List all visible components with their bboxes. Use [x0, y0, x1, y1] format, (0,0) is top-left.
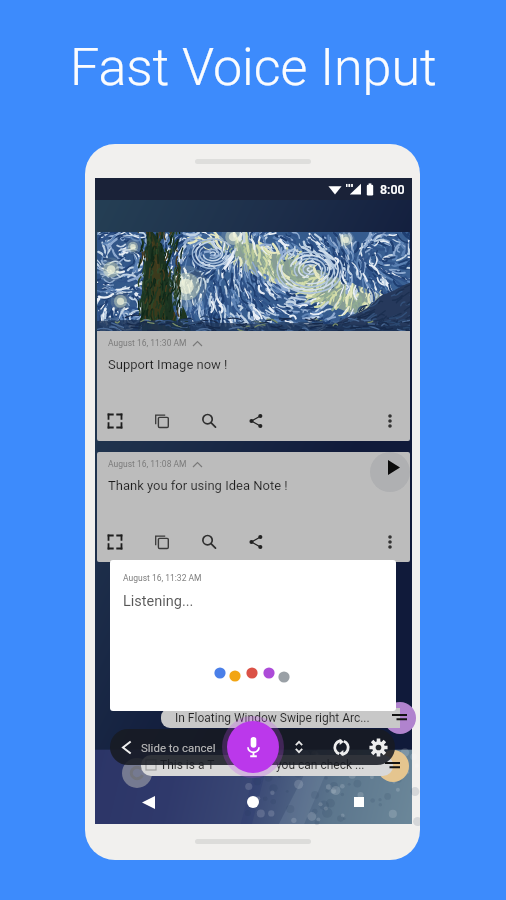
- button[interactable]: Search: [200, 412, 218, 430]
- staticText: August 16, 11:32 AM: [123, 573, 202, 583]
- staticText: Slide to cancel: [141, 741, 216, 754]
- staticText: In Floating Window Swipe right Arc...: [175, 711, 370, 725]
- button[interactable]: More options: [381, 412, 399, 430]
- button[interactable]: Refresh: [331, 737, 352, 758]
- button[interactable]: Voice input: [227, 721, 279, 773]
- staticText: Fast Voice Input: [70, 37, 437, 95]
- button[interactable]: Fullscreen: [106, 533, 124, 551]
- button[interactable]: Back: [135, 789, 161, 815]
- button[interactable]: Search: [200, 533, 218, 551]
- button[interactable]: Recents: [346, 789, 372, 815]
- button[interactable]: [161, 708, 400, 728]
- button[interactable]: Share: [247, 533, 265, 551]
- button[interactable]: Share: [247, 412, 265, 430]
- button[interactable]: Home: [240, 789, 266, 815]
- button[interactable]: Fullscreen: [106, 412, 124, 430]
- staticText: Listening...: [123, 593, 194, 610]
- button[interactable]: Play: [97, 452, 410, 562]
- button[interactable]: Back: [121, 740, 132, 755]
- staticText: 8:00: [380, 182, 405, 197]
- staticText: Support Image now !: [108, 357, 228, 372]
- button[interactable]: Copy: [153, 533, 171, 551]
- button[interactable]: Play: [388, 460, 400, 475]
- button[interactable]: Copy: [153, 412, 171, 430]
- staticText: This is a T: [160, 758, 215, 772]
- staticText: you can check ...: [276, 758, 365, 772]
- button[interactable]: More options: [381, 533, 399, 551]
- staticText: August 16, 11:08 AM: [108, 459, 187, 469]
- staticText: August 16, 11:30 AM: [108, 338, 187, 348]
- button[interactable]: Expand: [291, 739, 307, 755]
- button[interactable]: [141, 755, 393, 776]
- button[interactable]: August 16, 11:30 AM: [97, 232, 410, 441]
- button[interactable]: Settings: [368, 737, 389, 758]
- staticText: Thank you for using Idea Note !: [108, 478, 288, 493]
